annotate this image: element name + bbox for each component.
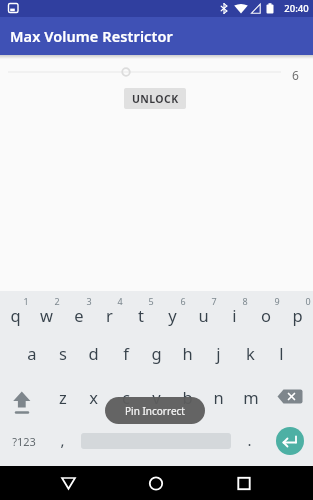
staticText: t [138,304,144,326]
staticText: 8 [242,295,248,307]
staticText: 3 [86,295,92,307]
button[interactable] [136,466,176,500]
staticText: i [232,304,237,326]
staticText: h [182,342,193,364]
staticText: a [27,342,37,364]
staticText: 7 [211,295,217,307]
button[interactable] [276,427,304,455]
button[interactable]: . [234,420,265,460]
staticText: n [213,386,224,408]
button[interactable]: m [235,375,266,419]
staticText: v [152,386,161,408]
staticText: 6 [292,67,299,83]
button[interactable]: UNLOCK [124,88,186,109]
button[interactable]: , [47,420,78,460]
button[interactable]: o [250,293,281,337]
staticText: y [168,304,177,326]
button[interactable]: ?123 [2,422,46,460]
button[interactable]: f [110,331,141,375]
staticText: UNLOCK [132,92,179,106]
staticText: j [216,342,221,364]
staticText: l [279,342,284,364]
staticText: q [10,304,21,326]
button[interactable]: q [0,293,31,337]
button[interactable]: j [203,331,234,375]
button[interactable]: t [125,293,156,337]
staticText: 20:40 [284,2,309,15]
button[interactable]: l [266,331,297,375]
staticText: k [246,342,255,364]
button[interactable]: d [78,331,109,375]
staticText: Pin Incorrect [125,404,185,418]
button[interactable]: r [94,293,125,337]
staticText: z [59,386,67,408]
button[interactable]: u [188,293,219,337]
staticText: g [151,342,162,364]
staticText: ?123 [12,434,36,449]
button[interactable]: b [172,375,203,419]
button[interactable]: v [141,375,172,419]
button[interactable]: w [31,293,62,337]
button[interactable] [48,466,88,500]
staticText: f [123,342,129,364]
button[interactable] [0,378,47,422]
button[interactable]: y [157,293,188,337]
button[interactable]: a [16,331,47,375]
staticText: m [243,386,259,408]
staticText: 0 [305,295,311,307]
staticText: x [89,386,98,408]
button[interactable]: s [47,331,78,375]
button[interactable]: i [219,293,250,337]
staticText: 1 [23,295,29,307]
button[interactable]: z [47,375,78,419]
staticText: b [182,386,193,408]
button[interactable]: h [172,331,203,375]
button[interactable] [224,466,264,500]
staticText: r [106,304,113,326]
staticText: 9 [274,295,280,307]
staticText: o [261,304,271,326]
button[interactable]: k [235,331,266,375]
staticText: p [292,304,303,326]
staticText: . [247,430,252,450]
staticText: s [59,342,67,364]
button[interactable]: e [63,293,94,337]
button[interactable] [266,378,313,422]
staticText: e [74,304,84,326]
staticText: Max Volume Restrictor [10,26,173,46]
staticText: c [122,386,130,408]
button[interactable]: n [203,375,234,419]
staticText: u [198,304,209,326]
button[interactable]: p [282,293,313,337]
staticText: 6 [180,295,186,307]
staticText: , [60,430,65,450]
button[interactable]: c [110,375,141,419]
staticText: 5 [148,295,154,307]
button[interactable]: x [78,375,109,419]
staticText: 4 [117,295,123,307]
button[interactable]: g [141,331,172,375]
staticText: w [40,304,53,326]
staticText: d [88,342,99,364]
staticText: 2 [54,295,60,307]
